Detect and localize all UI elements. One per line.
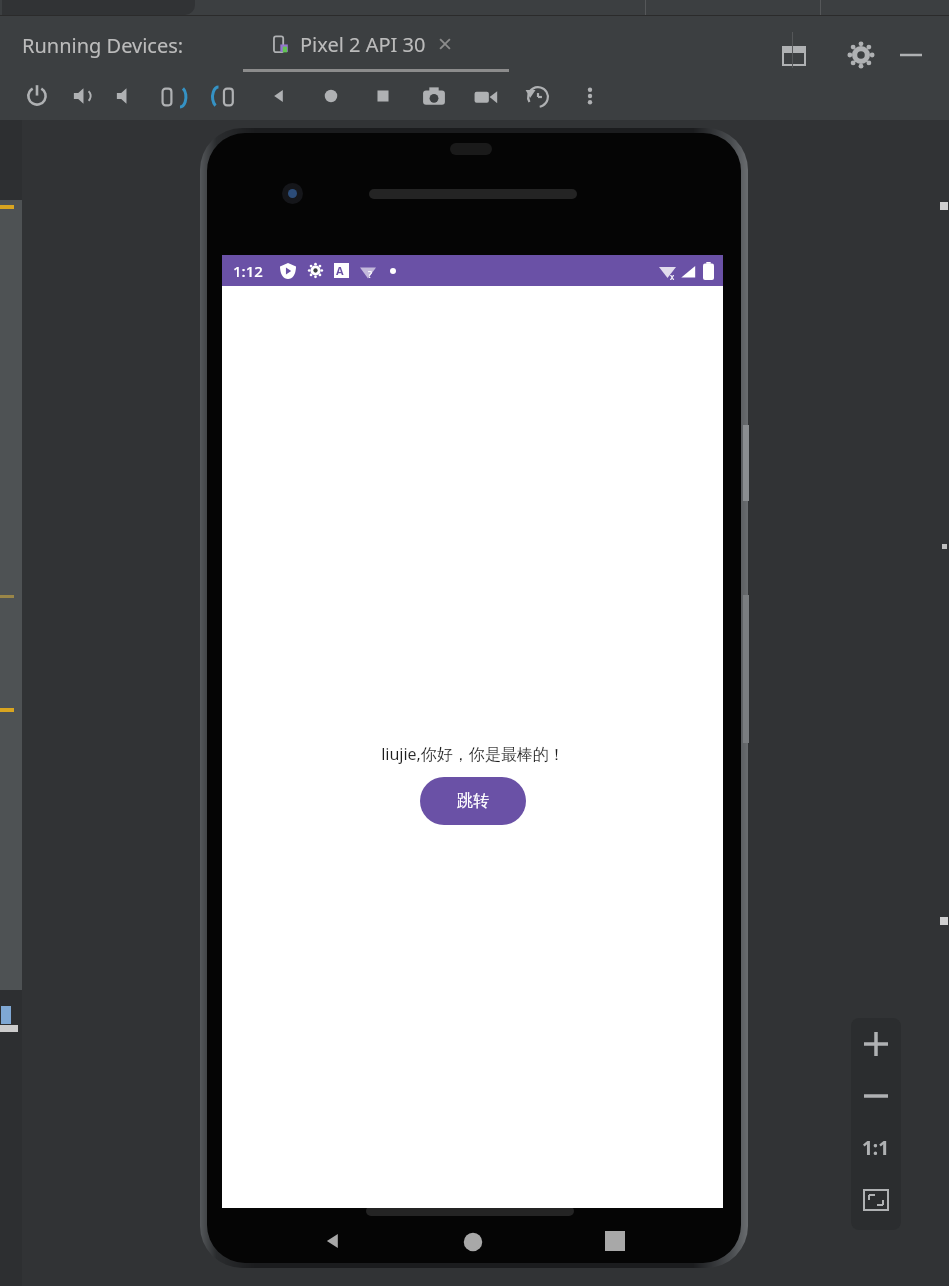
button[interactable]: Home bbox=[462, 1231, 484, 1253]
button[interactable]: Snapshot history bbox=[525, 84, 551, 110]
button[interactable]: Back bbox=[322, 1230, 344, 1252]
button[interactable]: Record screen bbox=[473, 84, 499, 110]
button[interactable]: Back bbox=[267, 84, 291, 108]
staticText: Pixel 2 API 30 bbox=[300, 31, 426, 58]
button[interactable]: More bbox=[578, 84, 602, 108]
button[interactable]: Home bbox=[319, 84, 343, 108]
button[interactable]: Pixel 2 API 30 bbox=[270, 16, 452, 72]
staticText: 跳转 bbox=[457, 791, 489, 811]
button[interactable]: Rotate right bbox=[212, 84, 238, 110]
button[interactable]: 1:1 bbox=[851, 1122, 901, 1174]
other: Close tab bbox=[438, 37, 452, 51]
button[interactable]: Settings bbox=[846, 40, 876, 70]
button[interactable]: Volume down bbox=[114, 84, 138, 108]
button[interactable]: Minimize bbox=[896, 40, 926, 70]
staticText: Running Devices: bbox=[22, 32, 184, 59]
button[interactable]: Rotate left bbox=[161, 84, 187, 110]
staticText: A bbox=[336, 263, 344, 278]
button[interactable]: Power bbox=[25, 84, 49, 108]
button[interactable]: Zoom in bbox=[851, 1018, 901, 1070]
staticText: liujie,你好，你是最棒的！ bbox=[381, 743, 565, 765]
button[interactable]: Volume up bbox=[71, 84, 95, 108]
button[interactable]: Fit to screen bbox=[851, 1174, 901, 1226]
button[interactable]: Zoom out bbox=[851, 1070, 901, 1122]
staticText: 1:1 bbox=[862, 1135, 890, 1161]
staticText: x bbox=[670, 271, 675, 282]
button[interactable]: Take screenshot bbox=[421, 84, 447, 110]
button[interactable]: 跳转 bbox=[420, 777, 526, 825]
button[interactable]: Overview bbox=[371, 84, 395, 108]
button[interactable]: Layout bbox=[780, 42, 808, 70]
staticText: ? bbox=[368, 268, 372, 280]
staticText: 1:12 bbox=[233, 261, 263, 281]
